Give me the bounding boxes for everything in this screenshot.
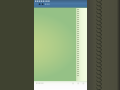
button[interactable]: [76, 26, 87, 28]
button[interactable]: [76, 52, 87, 54]
button[interactable]: [76, 28, 87, 30]
button[interactable]: [76, 54, 87, 56]
button[interactable]: [76, 72, 87, 74]
button[interactable]: [76, 50, 87, 52]
button[interactable]: [76, 24, 87, 26]
button[interactable]: [76, 46, 87, 48]
button[interactable]: [76, 18, 87, 20]
button[interactable]: [76, 70, 87, 72]
button[interactable]: [76, 66, 87, 68]
button[interactable]: [76, 64, 87, 66]
button[interactable]: [76, 30, 87, 32]
button[interactable]: [76, 14, 87, 16]
button[interactable]: [76, 60, 87, 62]
button[interactable]: [76, 42, 87, 44]
button[interactable]: [76, 48, 87, 50]
button[interactable]: [34, 81, 87, 90]
button[interactable]: [76, 8, 87, 10]
button[interactable]: [76, 20, 87, 22]
button[interactable]: [76, 56, 87, 58]
button[interactable]: [76, 12, 87, 14]
button[interactable]: [76, 10, 87, 12]
button[interactable]: [34, 0, 87, 8]
button[interactable]: [76, 32, 87, 34]
button[interactable]: [76, 44, 87, 46]
button[interactable]: [76, 36, 87, 38]
button[interactable]: [76, 22, 87, 24]
button[interactable]: [76, 74, 87, 76]
button[interactable]: [76, 58, 87, 60]
button[interactable]: [76, 38, 87, 40]
button[interactable]: [76, 62, 87, 64]
button[interactable]: [76, 68, 87, 70]
button[interactable]: [76, 16, 87, 18]
button[interactable]: [76, 34, 87, 36]
button[interactable]: [76, 40, 87, 42]
